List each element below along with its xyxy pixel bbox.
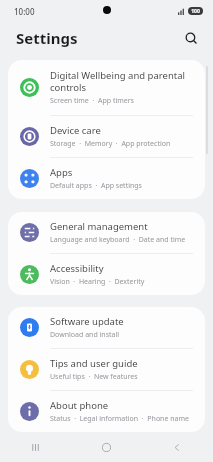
staticText: Accessibility (50, 262, 104, 275)
staticText: 10:00 (14, 6, 35, 17)
staticText: Settings (16, 28, 78, 48)
button[interactable]: Back (142, 432, 213, 462)
staticText: Digital Wellbeing and parental controls (50, 69, 185, 94)
button[interactable]: Device care (8, 116, 205, 157)
staticText: About phone (50, 399, 109, 412)
staticText: Status · Legal information · Phone name (50, 414, 189, 424)
staticText: Screen time · App timers (50, 96, 134, 106)
staticText: Vision · Hearing · Dexterity (50, 277, 145, 287)
button[interactable]: General management (8, 212, 205, 253)
staticText: Download and install (50, 330, 120, 340)
button[interactable]: Home (71, 432, 142, 462)
staticText: Language and keyboard · Date and time (50, 235, 186, 245)
staticText: Useful tips · New features (50, 372, 138, 382)
button[interactable]: Recent apps (0, 432, 71, 462)
staticText: 100 (191, 8, 200, 15)
staticText: Tips and user guide (50, 357, 138, 370)
button[interactable]: Accessibility (8, 254, 205, 295)
button[interactable]: Search settings (178, 25, 204, 51)
staticText: Default apps · App settings (50, 181, 142, 191)
staticText: Device care (50, 124, 101, 137)
button[interactable]: Tips and user guide (8, 349, 205, 390)
staticText: Software update (50, 315, 124, 328)
staticText: General management (50, 220, 148, 233)
staticText: Storage · Memory · App protection (50, 139, 171, 149)
staticText: Apps (50, 166, 73, 179)
button[interactable]: Software update (8, 307, 205, 348)
button[interactable]: About phone (8, 391, 205, 432)
button[interactable]: Digital Wellbeing and parental controls (8, 60, 205, 115)
button[interactable]: Apps (8, 158, 205, 199)
